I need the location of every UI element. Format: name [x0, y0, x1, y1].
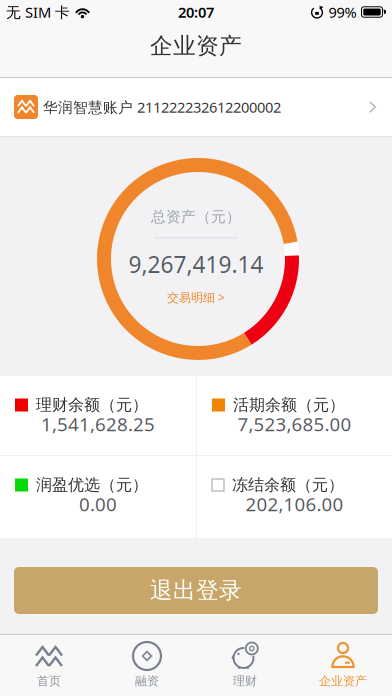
staticText: 冻结余额（元）: [232, 475, 344, 495]
button[interactable]: 退出登录: [14, 567, 378, 614]
staticText: 20:07: [178, 2, 214, 22]
staticText: 华润智慧账户 211222232612200002: [43, 97, 281, 117]
staticText: 理财余额（元）: [36, 395, 148, 415]
staticText: 0.00: [79, 492, 117, 516]
button[interactable]: 华润智慧账户 211222232612200002: [0, 78, 392, 136]
button[interactable]: 理财: [196, 635, 294, 696]
staticText: 融资: [135, 674, 159, 688]
staticText: 7,523,685.00: [237, 412, 351, 436]
staticText: 202,106.00: [245, 492, 343, 516]
button[interactable]: 企业资产: [294, 635, 392, 696]
staticText: 理财: [233, 674, 257, 688]
staticText: 活期余额（元）: [233, 395, 345, 415]
staticText: 总资产（元）: [151, 208, 241, 226]
button[interactable]: 首页: [0, 635, 98, 696]
staticText: 无 SIM 卡: [6, 2, 70, 22]
staticText: 润盈优选（元）: [36, 475, 148, 495]
staticText: 99%: [328, 2, 356, 22]
button[interactable]: 融资: [98, 635, 196, 696]
staticText: 企业资产: [319, 674, 367, 688]
staticText: 9,267,419.14: [128, 249, 263, 279]
staticText: 退出登录: [150, 577, 242, 604]
button[interactable]: 交易明细 >: [167, 287, 225, 307]
staticText: 首页: [37, 674, 61, 688]
staticText: 企业资产: [150, 32, 242, 60]
staticText: 交易明细 >: [167, 289, 225, 305]
staticText: 1,541,628.25: [41, 412, 155, 436]
